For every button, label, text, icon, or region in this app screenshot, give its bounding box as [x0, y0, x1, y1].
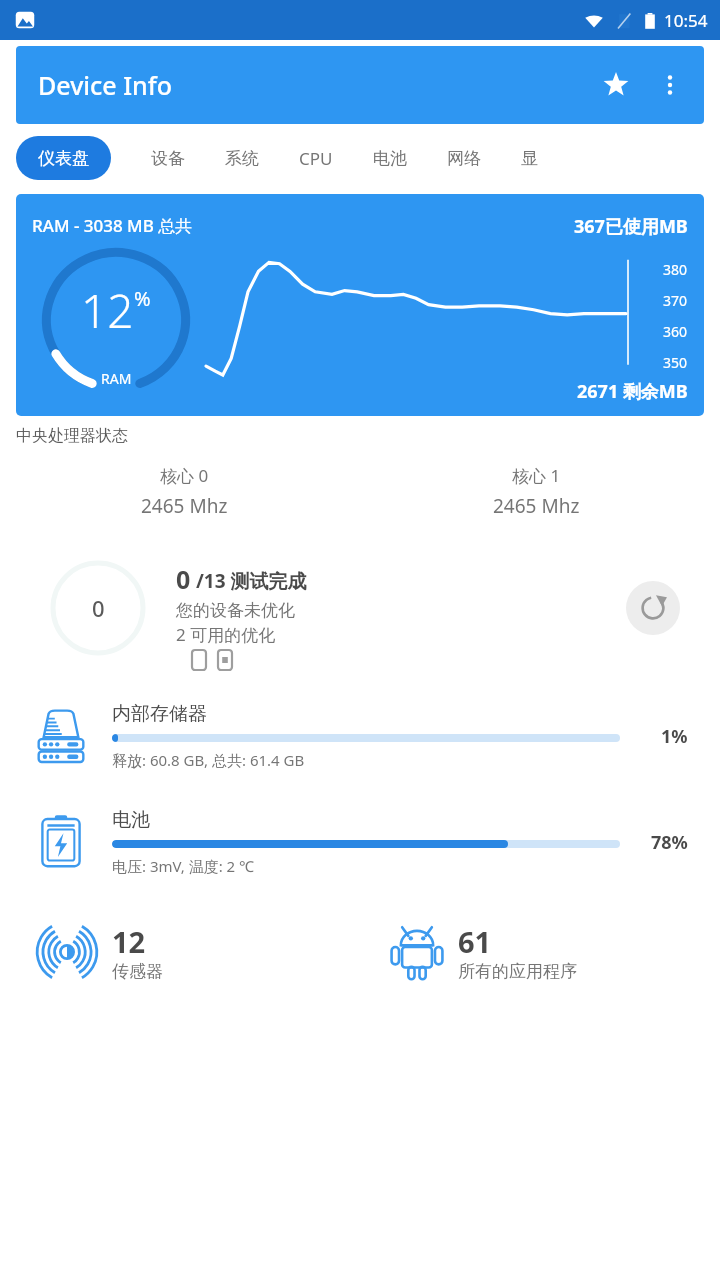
- staticText: 360: [663, 322, 688, 341]
- button[interactable]: Favorite: [592, 61, 640, 109]
- button[interactable]: 内部存储器: [16, 688, 704, 784]
- button[interactable]: 设备: [131, 136, 205, 180]
- staticText: 设备: [151, 148, 185, 169]
- staticText: 2671 剩余MB: [577, 379, 688, 404]
- staticText: 显: [521, 148, 538, 169]
- staticText: 系统: [225, 148, 259, 169]
- staticText: CPU: [299, 147, 333, 170]
- staticText: 所有的应用程序: [458, 961, 577, 982]
- staticText: 61: [458, 922, 492, 961]
- staticText: 78%: [651, 830, 688, 855]
- staticText: 370: [663, 291, 688, 310]
- button[interactable]: 61: [368, 900, 704, 1004]
- button[interactable]: RAM - 3038 MB 总共: [16, 194, 704, 416]
- staticText: 传感器: [112, 961, 163, 982]
- button[interactable]: 仪表盘: [16, 136, 111, 180]
- staticText: 电池: [112, 808, 150, 832]
- button[interactable]: 网络: [427, 136, 501, 180]
- staticText: 释放: 60.8 GB, 总共: 61.4 GB: [112, 750, 305, 770]
- button[interactable]: Device Info: [16, 46, 704, 124]
- button[interactable]: 电池: [16, 794, 704, 890]
- staticText: 380: [663, 260, 688, 279]
- staticText: 中央处理器状态: [16, 426, 128, 446]
- staticText: 2 可用的优化: [176, 623, 276, 646]
- staticText: /13 测试完成: [191, 568, 307, 594]
- staticText: 核心 0: [160, 464, 209, 487]
- button[interactable]: 系统: [205, 136, 279, 180]
- button[interactable]: Refresh: [626, 581, 680, 635]
- staticText: 仪表盘: [38, 148, 89, 169]
- staticText: 10:54: [664, 9, 708, 32]
- staticText: 12: [81, 279, 134, 342]
- staticText: 367已使用MB: [574, 214, 688, 239]
- staticText: 0: [176, 562, 191, 596]
- staticText: 12: [112, 922, 146, 961]
- staticText: 0: [92, 593, 105, 623]
- staticText: 内部存储器: [112, 702, 207, 726]
- staticText: Device Info: [38, 68, 172, 102]
- button[interactable]: 12: [16, 900, 352, 1004]
- staticText: RAM: [101, 369, 132, 388]
- staticText: 2465 Mhz: [141, 493, 228, 519]
- button[interactable]: 核心 1: [368, 452, 704, 530]
- staticText: %: [134, 285, 151, 312]
- staticText: 电池: [373, 148, 407, 169]
- staticText: 核心 1: [512, 464, 561, 487]
- button[interactable]: 电池: [353, 136, 427, 180]
- button[interactable]: 显: [501, 136, 558, 180]
- staticText: 350: [663, 353, 688, 372]
- staticText: 电压: 3mV, 温度: 2 ℃: [112, 856, 255, 876]
- button[interactable]: More options: [646, 61, 694, 109]
- button[interactable]: CPU: [279, 136, 353, 180]
- staticText: 1%: [661, 724, 688, 749]
- button[interactable]: 核心 0: [16, 452, 352, 530]
- button[interactable]: 0: [16, 538, 704, 678]
- staticText: RAM - 3038 MB 总共: [32, 214, 193, 237]
- staticText: 网络: [447, 148, 481, 169]
- staticText: 您的设备未优化: [176, 600, 295, 621]
- staticText: 2465 Mhz: [493, 493, 580, 519]
